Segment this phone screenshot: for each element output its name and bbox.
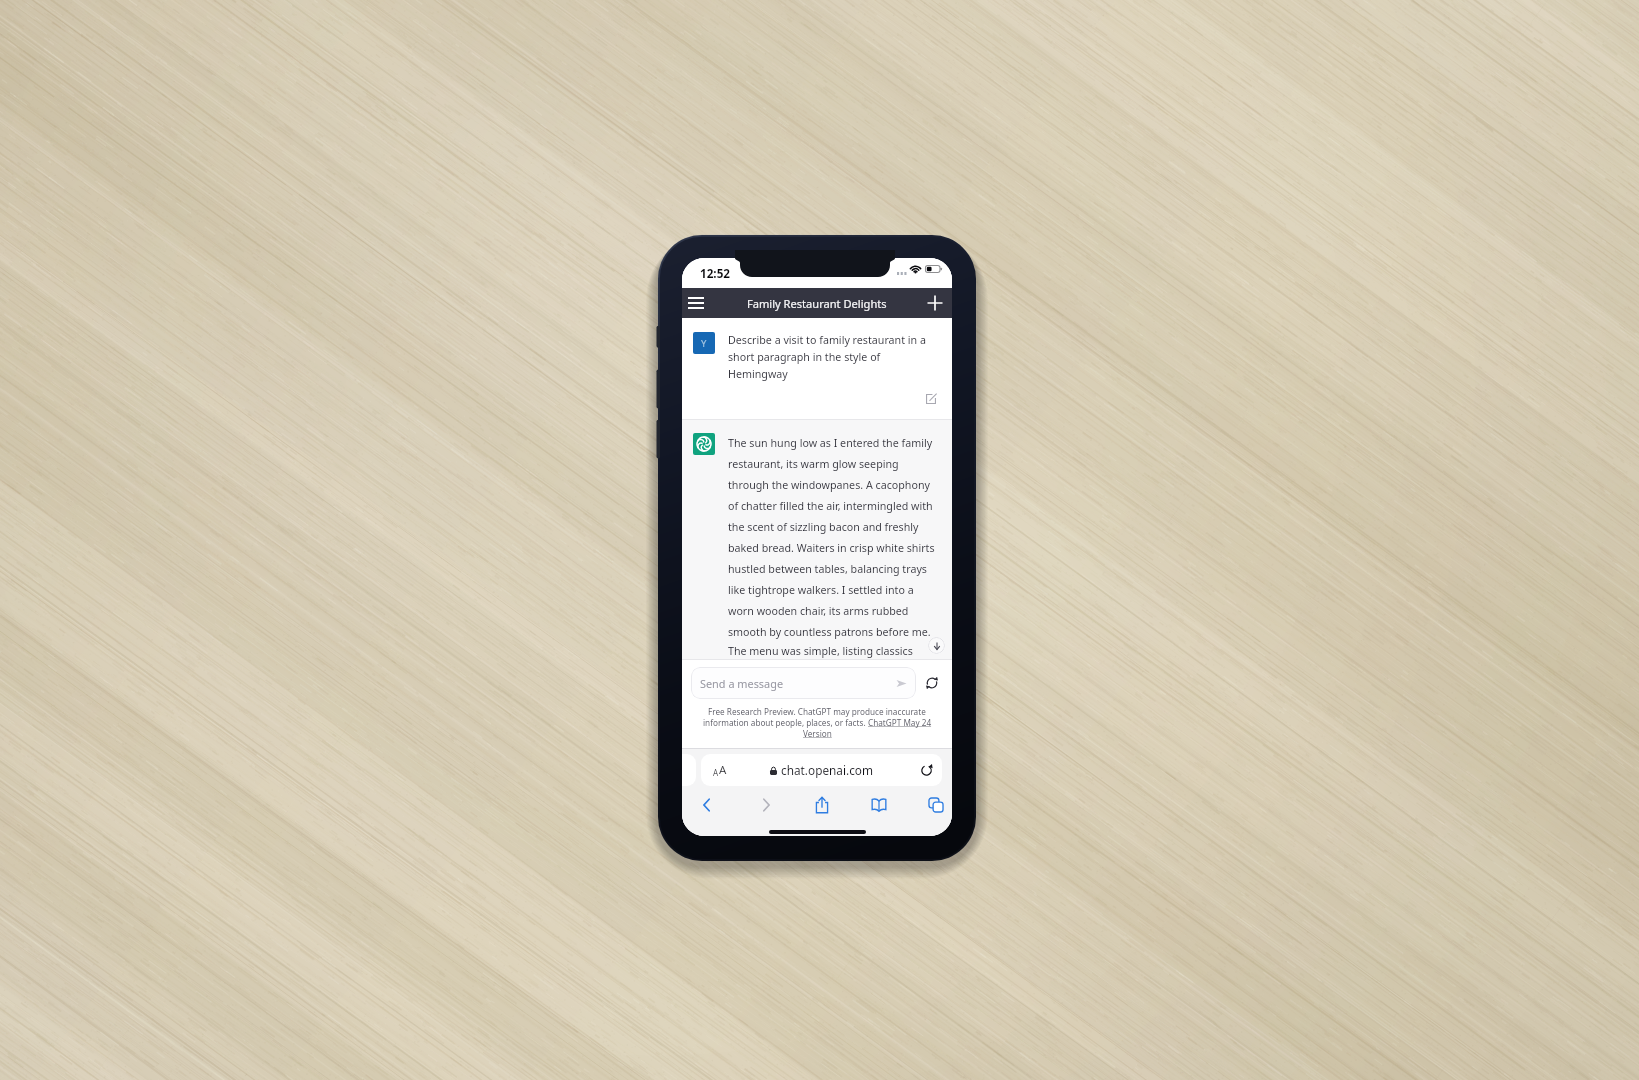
staticText: A xyxy=(713,767,719,778)
staticText: 12:52 xyxy=(700,265,731,281)
button[interactable]: Open menu xyxy=(683,290,709,316)
button[interactable]: A xyxy=(701,754,942,786)
button[interactable]: Send a message xyxy=(691,667,916,699)
button[interactable]: Back xyxy=(694,792,720,818)
staticText: Free Research Preview. ChatGPT may produ… xyxy=(708,706,926,717)
button[interactable]: Share xyxy=(809,792,835,818)
staticText: chat.openai.com xyxy=(781,762,873,778)
staticText: A xyxy=(719,762,727,778)
button[interactable]: Tabs xyxy=(923,792,949,818)
staticText: restaurant, its warm glow seeping xyxy=(728,457,899,472)
button[interactable]: Edit message xyxy=(922,390,939,407)
button[interactable]: Forward xyxy=(753,792,779,818)
staticText: Describe a visit to family restaurant in… xyxy=(728,333,926,348)
staticText: hustled between tables, balancing trays xyxy=(728,562,927,577)
staticText: short paragraph in the style of xyxy=(728,350,881,365)
button[interactable]: Regenerate response xyxy=(921,672,943,694)
staticText: Send a message xyxy=(700,676,784,691)
staticText: the scent of sizzling bacon and freshly xyxy=(728,520,919,535)
staticText: smooth by countless patrons before me. xyxy=(728,625,931,640)
staticText: of chatter filled the air, intermingled … xyxy=(728,499,933,514)
staticText: information about people, places, or fac… xyxy=(703,717,868,728)
staticText: baked bread. Waiters in crisp white shir… xyxy=(728,541,935,556)
button[interactable]: Scroll to bottom xyxy=(928,637,945,654)
staticText: Y xyxy=(701,337,707,350)
button[interactable]: Y xyxy=(682,318,952,420)
staticText: The menu was simple, listing classics xyxy=(728,644,913,659)
staticText: worn wooden chair, its arms rubbed xyxy=(728,604,909,619)
staticText: The sun hung low as I entered the family xyxy=(728,436,933,451)
staticText: Version xyxy=(803,728,832,739)
staticText: like tightrope walkers. I settled into a xyxy=(728,583,914,598)
staticText: Hemingway xyxy=(728,367,788,382)
button[interactable]: Bookmarks xyxy=(866,792,892,818)
staticText: through the windowpanes. A cacophony xyxy=(728,478,930,493)
button[interactable]: New chat xyxy=(922,290,948,316)
staticText: Family Restaurant Delights xyxy=(747,296,887,311)
button[interactable]: The sun hung low as I entered the family xyxy=(682,420,952,660)
staticText: ChatGPT May 24 xyxy=(868,717,932,728)
button[interactable]: Reload page xyxy=(918,762,934,778)
